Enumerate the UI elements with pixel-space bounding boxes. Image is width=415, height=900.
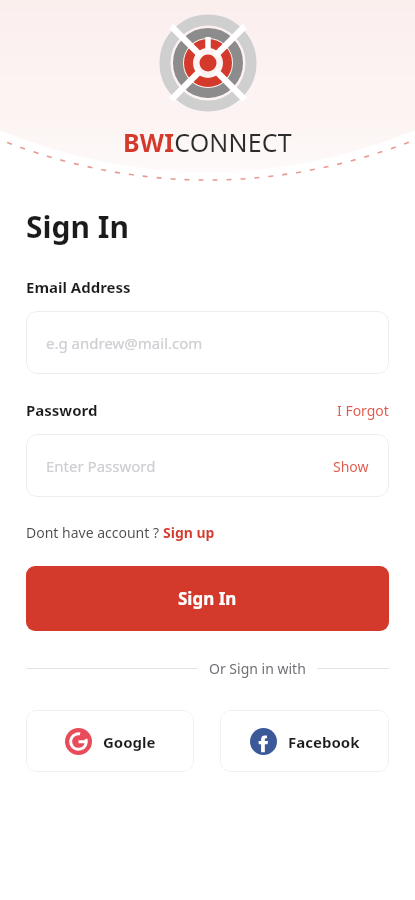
staticText: Password bbox=[26, 400, 98, 420]
button[interactable]: Sign up bbox=[163, 523, 215, 542]
staticText: Facebook bbox=[288, 732, 360, 752]
staticText: Sign In bbox=[178, 587, 237, 610]
staticText: Sign up bbox=[163, 523, 215, 542]
staticText: Google bbox=[103, 732, 156, 752]
button[interactable]: Enter Password bbox=[26, 434, 389, 497]
button[interactable]: Google bbox=[26, 710, 194, 772]
staticText: e.g andrew@mail.com bbox=[46, 333, 203, 353]
staticText: Sign In bbox=[26, 206, 129, 247]
button[interactable]: e.g andrew@mail.com bbox=[26, 311, 389, 374]
staticText: BWICONNECT bbox=[123, 125, 292, 159]
staticText: Email Address bbox=[26, 277, 131, 297]
staticText: Show bbox=[333, 457, 369, 476]
button[interactable]: Facebook bbox=[220, 710, 389, 772]
button[interactable]: Sign In bbox=[26, 566, 389, 631]
staticText: Dont have account ? bbox=[26, 523, 163, 542]
button[interactable]: I Forgot bbox=[337, 401, 389, 420]
button[interactable]: Show bbox=[333, 457, 369, 476]
staticText: Or Sign in with bbox=[209, 659, 306, 678]
staticText: Enter Password bbox=[46, 456, 156, 476]
staticText: I Forgot bbox=[337, 401, 389, 420]
